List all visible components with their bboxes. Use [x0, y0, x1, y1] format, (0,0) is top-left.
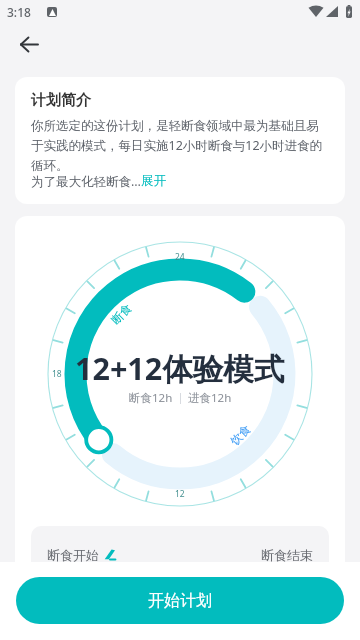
staticText: 24: [175, 251, 185, 263]
staticText: 你所选定的这份计划，是轻断食领域中最为基础且易于实践的模式，每日实施12小时断食…: [31, 118, 329, 173]
staticText: 为了最大化轻断食…: [31, 173, 141, 190]
staticText: 断食: [108, 301, 135, 327]
staticText: 3:18: [7, 4, 31, 20]
staticText: 断食12h: [129, 390, 173, 406]
button[interactable]: 开始计划: [16, 577, 344, 624]
staticText: 断食开始: [47, 547, 99, 562]
staticText: 断食结束: [261, 547, 313, 562]
staticText: 12: [175, 488, 185, 500]
button[interactable]: Back: [9, 25, 48, 64]
staticText: 12+12体验模式: [75, 347, 285, 389]
button[interactable]: 断食开始: [31, 526, 329, 562]
staticText: 开始计划: [148, 591, 212, 611]
staticText: 18: [52, 368, 62, 380]
staticText: 饮食: [227, 422, 254, 448]
button[interactable]: 计划简介: [15, 77, 345, 204]
staticText: 计划简介: [31, 91, 91, 110]
button[interactable]: 展开: [141, 173, 166, 189]
staticText: 进食12h: [188, 390, 232, 406]
